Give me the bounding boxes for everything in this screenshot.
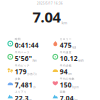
staticText: 歩 xyxy=(33,86,36,89)
staticText: 7.04 xyxy=(33,7,61,26)
staticText: 22.3 xyxy=(15,94,29,100)
staticText: km/h xyxy=(78,59,84,62)
staticText: 7.04 xyxy=(60,94,74,100)
staticText: /km xyxy=(32,59,36,62)
staticText: 平均心拍数 xyxy=(60,77,75,80)
staticText: 平均ペース xyxy=(15,51,30,54)
staticText: bpm xyxy=(72,85,78,89)
staticText: 2025/5/17 16:36 xyxy=(37,2,63,5)
staticText: 平均歩幅 xyxy=(60,64,72,67)
staticText: km xyxy=(61,20,67,25)
staticText: 0:41:44 xyxy=(15,41,39,50)
staticText: 179 xyxy=(15,67,27,76)
staticText: 平均ピッチ xyxy=(15,64,30,67)
staticText: 歩数/分 xyxy=(27,72,37,76)
staticText: m xyxy=(29,98,31,100)
staticText: 10.12 xyxy=(60,54,78,63)
staticText: 平均速度 xyxy=(60,51,72,54)
staticText: kcal xyxy=(72,46,76,49)
staticText: 150 xyxy=(60,80,72,89)
staticText: 7,481 xyxy=(15,80,33,89)
staticText: 距離 xyxy=(60,90,66,94)
staticText: km xyxy=(74,98,77,100)
staticText: カロリー xyxy=(60,37,72,41)
staticText: 歩数 xyxy=(15,77,21,80)
staticText: 5'56" xyxy=(15,54,32,63)
staticText: 94 xyxy=(60,67,68,76)
staticText: 時間 xyxy=(15,37,21,41)
staticText: cm xyxy=(68,72,71,76)
staticText: 475 xyxy=(60,41,72,50)
staticText: 上り下り xyxy=(15,90,27,94)
